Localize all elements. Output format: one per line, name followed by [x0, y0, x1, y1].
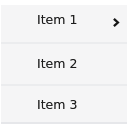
staticText: Item 3	[37, 97, 78, 112]
staticText: Item 1	[37, 12, 78, 27]
button[interactable]: Item 2	[1, 44, 127, 84]
button[interactable]: Item 1	[1, 5, 127, 42]
staticText: Item 3	[37, 97, 78, 112]
staticText: Item 2	[37, 56, 78, 71]
button[interactable]: Item 3	[1, 86, 127, 122]
staticText: Item 1	[37, 12, 78, 27]
staticText: Item 2	[37, 56, 78, 71]
